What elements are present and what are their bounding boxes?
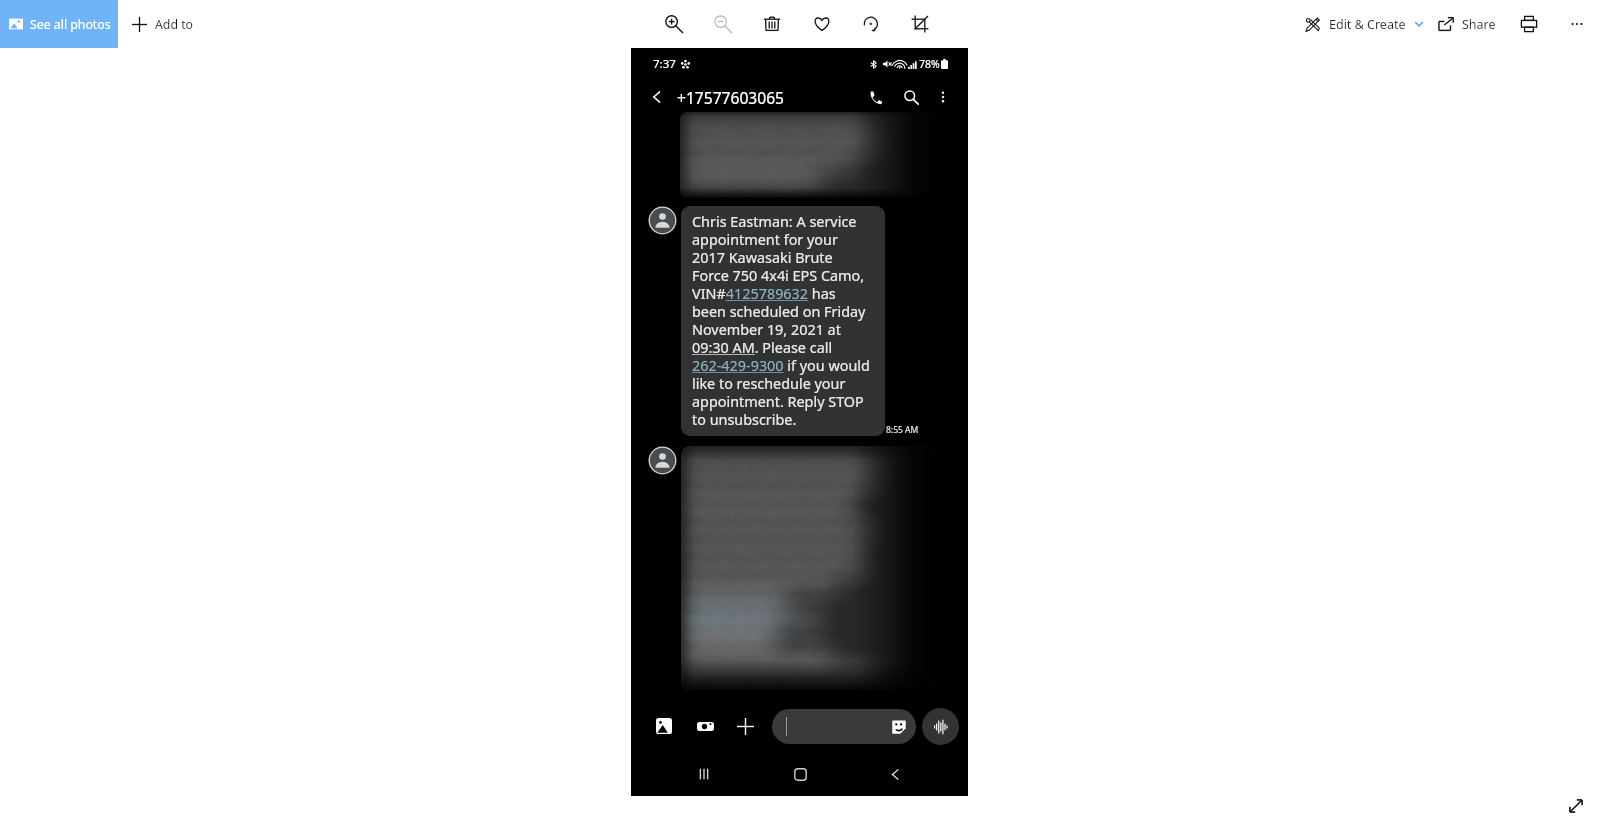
button[interactable]: Attach (733, 714, 757, 738)
button[interactable]: Gallery (652, 714, 676, 738)
button[interactable]: Rotate (859, 0, 883, 48)
button[interactable]: Expand (1563, 793, 1589, 819)
staticText: 78% (919, 57, 940, 71)
staticText: Edit & Create (1329, 16, 1406, 33)
button[interactable]: Enter message (772, 709, 916, 744)
button[interactable]: Back (876, 755, 914, 793)
button[interactable]: Search (898, 84, 924, 110)
button[interactable]: Add to (126, 0, 200, 48)
button[interactable]: Delete (760, 0, 784, 48)
button[interactable]: Back (646, 86, 668, 108)
staticText: Share (1462, 16, 1496, 33)
staticText: See all photos (30, 16, 111, 33)
button[interactable]: Camera (693, 714, 717, 738)
button[interactable]: Home (781, 755, 819, 793)
button[interactable]: Zoom in (662, 0, 686, 48)
button[interactable]: Edit & Create (1298, 0, 1430, 48)
button[interactable]: Print (1517, 0, 1541, 48)
button[interactable]: See more (1565, 0, 1589, 48)
staticText: 8:55 AM (886, 424, 919, 436)
button[interactable]: Voice input (922, 708, 959, 745)
staticText: Chris Eastman: A service appointment for… (692, 212, 872, 429)
button[interactable]: Share (1432, 0, 1502, 48)
button[interactable]: Recents (685, 755, 723, 793)
button[interactable]: Crop (908, 0, 932, 48)
button[interactable]: Call (862, 84, 888, 110)
staticText: +17577603065 (677, 87, 785, 108)
button[interactable]: Add to favourites (810, 0, 834, 48)
button[interactable]: Message (681, 446, 933, 690)
button[interactable]: More options (932, 86, 954, 108)
button[interactable]: See all photos (0, 0, 118, 48)
button[interactable]: Zoom out (711, 0, 735, 48)
staticText: Add to (155, 16, 194, 33)
staticText: 7:37 (653, 56, 676, 72)
button[interactable]: Chris Eastman: A service appointment for… (681, 206, 885, 436)
